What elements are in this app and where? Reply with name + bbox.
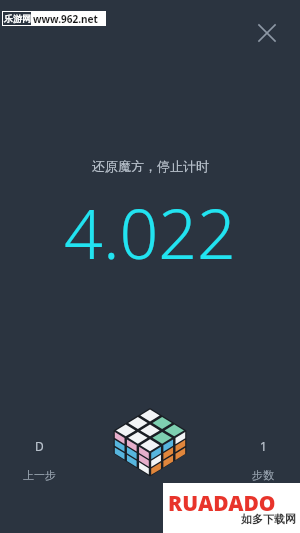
staticText: RUADADO	[168, 489, 276, 518]
staticText: 如多下载网	[241, 512, 296, 526]
button[interactable]: 1	[232, 438, 294, 490]
staticText: D	[35, 438, 44, 454]
staticText: 还原魔方，停止计时	[92, 158, 209, 174]
staticText: www.962.net	[33, 12, 98, 26]
staticText: 4.022	[64, 186, 236, 279]
staticText: 上一步	[23, 468, 56, 482]
staticText: 乐游网	[4, 13, 31, 24]
staticText: 步数	[252, 468, 274, 482]
staticText: 1	[260, 438, 267, 454]
button[interactable]: D	[8, 438, 70, 490]
button[interactable]: Close	[249, 15, 285, 51]
